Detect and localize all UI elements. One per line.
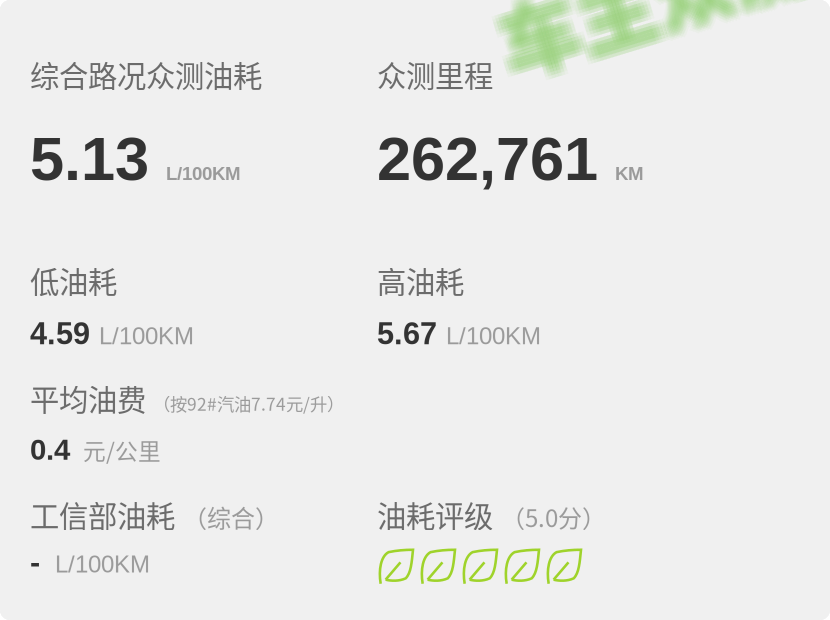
staticText: 车主众测 xyxy=(477,0,797,50)
staticText: 车主众测 xyxy=(480,0,800,57)
staticText: L/100KM xyxy=(446,322,541,349)
staticText: 车主众测 xyxy=(474,0,794,60)
staticText: - xyxy=(30,545,40,579)
staticText: 平均油费 xyxy=(30,377,146,419)
staticText: L/100KM xyxy=(55,551,150,578)
staticText: 262,761 xyxy=(377,124,598,193)
staticText: 元/公里 xyxy=(83,433,161,466)
staticText: 工信部油耗 xyxy=(30,493,175,536)
staticText: 车主众测 xyxy=(471,0,791,63)
staticText: KM xyxy=(615,163,644,184)
staticText: L/100KM xyxy=(166,163,241,184)
staticText: 车主众测 xyxy=(474,0,794,57)
staticText: 车主众测 xyxy=(480,0,800,50)
staticText: 车主众测 xyxy=(471,0,791,50)
staticText: 0.4 xyxy=(30,433,70,466)
staticText: 高油耗 xyxy=(377,259,464,301)
staticText: 低油耗 xyxy=(30,259,117,301)
staticText: 车主众测 xyxy=(480,0,800,63)
staticText: L/100KM xyxy=(99,322,194,349)
staticText: 车主众测 xyxy=(474,0,794,54)
staticText: 众测里程 xyxy=(377,53,493,95)
staticText: 车主众测 xyxy=(468,0,788,57)
staticText: （综合） xyxy=(183,499,279,534)
staticText: 车主众测 xyxy=(471,0,791,57)
staticText: 车主众测 xyxy=(468,0,788,50)
staticText: （5.0分） xyxy=(501,499,606,534)
staticText: 4.59 xyxy=(30,316,90,351)
staticText: 综合路况众测油耗 xyxy=(30,53,262,95)
staticText: 车主众测 xyxy=(468,0,788,63)
staticText: 车主众测 xyxy=(471,0,791,60)
staticText: 车主众测 xyxy=(477,0,797,54)
staticText: 车主众测 xyxy=(474,0,794,50)
staticText: 车主众测 xyxy=(477,0,797,60)
staticText: 车主众测 xyxy=(480,0,800,60)
staticText: 车主众测 xyxy=(468,0,788,54)
staticText: 车主众测 xyxy=(480,0,800,54)
staticText: 车主众测 xyxy=(477,0,797,63)
staticText: 车主众测 xyxy=(474,0,794,63)
staticText: 5.13 xyxy=(30,124,149,193)
staticText: 车主众测 xyxy=(468,0,788,60)
staticText: 车主众测 xyxy=(471,0,791,54)
staticText: 5.67 xyxy=(377,316,437,351)
staticText: （按92#汽油7.74元/升） xyxy=(153,391,344,416)
staticText: 车主众测 xyxy=(477,0,797,57)
staticText: 油耗评级 xyxy=(377,493,493,536)
